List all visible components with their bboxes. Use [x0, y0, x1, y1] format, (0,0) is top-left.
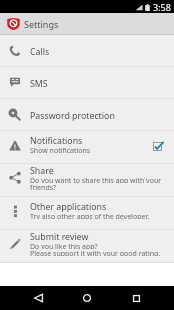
staticText: Please support it with your good rating.	[30, 249, 161, 256]
button[interactable]: Recents	[124, 286, 148, 310]
button[interactable]: Notifications	[0, 131, 174, 163]
staticText: Other applications	[30, 201, 107, 212]
staticText: Show notifications	[30, 146, 91, 153]
staticText: Settings	[24, 18, 59, 30]
staticText: friends?	[30, 183, 57, 190]
button[interactable]: Home	[75, 286, 99, 310]
staticText: Do you want to share this app with your	[30, 176, 162, 183]
staticText: SMS	[30, 78, 48, 90]
staticText: 3:58	[153, 1, 171, 13]
staticText: Calls	[30, 46, 50, 58]
button[interactable]: Back	[26, 286, 50, 310]
button[interactable]: SMS	[0, 67, 174, 98]
staticText: Try also other apps of the developer.	[30, 212, 150, 219]
button[interactable]: Password protection	[0, 99, 174, 130]
button[interactable]: Other applications	[0, 197, 174, 229]
staticText: Submit review	[30, 231, 89, 242]
button[interactable]: Share	[0, 164, 174, 196]
staticText: Do you like this app?	[30, 242, 98, 249]
staticText: Password protection	[30, 110, 115, 122]
staticText: Notifications	[30, 135, 83, 146]
staticText: Share	[30, 165, 54, 176]
button[interactable]: Submit review	[0, 230, 174, 262]
button[interactable]: Calls	[0, 35, 174, 66]
